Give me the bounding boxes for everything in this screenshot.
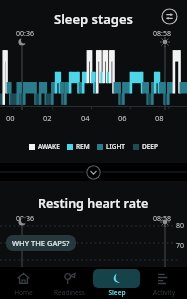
- staticText: Sleep: [108, 288, 126, 297]
- staticText: Home: [14, 288, 33, 297]
- staticText: 08:58: [153, 29, 171, 39]
- staticText: 04: [81, 113, 99, 123]
- staticText: 00:36: [16, 214, 34, 224]
- button[interactable]: Adjust sleep stages: [161, 8, 178, 25]
- staticText: Sleep stages: [54, 10, 134, 28]
- staticText: Activity: [153, 288, 175, 297]
- staticText: 80: [176, 221, 185, 231]
- staticText: 00:36: [16, 29, 34, 39]
- staticText: DEEP: [142, 142, 158, 151]
- button[interactable]: WHY THE GAPS?: [6, 235, 76, 251]
- staticText: 70: [176, 241, 185, 251]
- staticText: AWAKE: [38, 142, 60, 151]
- button[interactable]: Expand: [86, 165, 101, 180]
- staticText: REM: [76, 142, 90, 151]
- staticText: LIGHT: [106, 142, 126, 151]
- staticText: Resting heart rate: [38, 195, 149, 212]
- staticText: 08:58: [153, 214, 171, 224]
- staticText: 06: [118, 113, 136, 123]
- button[interactable]: Sleep: [93, 267, 140, 299]
- staticText: WHY THE GAPS?: [12, 238, 70, 248]
- button[interactable]: Readiness: [46, 267, 93, 299]
- button[interactable]: Activity: [140, 267, 187, 299]
- staticText: 02: [43, 113, 61, 123]
- staticText: Readiness: [54, 288, 85, 297]
- button[interactable]: Home: [0, 267, 46, 299]
- staticText: 08: [155, 113, 173, 123]
- staticText: 00: [6, 113, 24, 123]
